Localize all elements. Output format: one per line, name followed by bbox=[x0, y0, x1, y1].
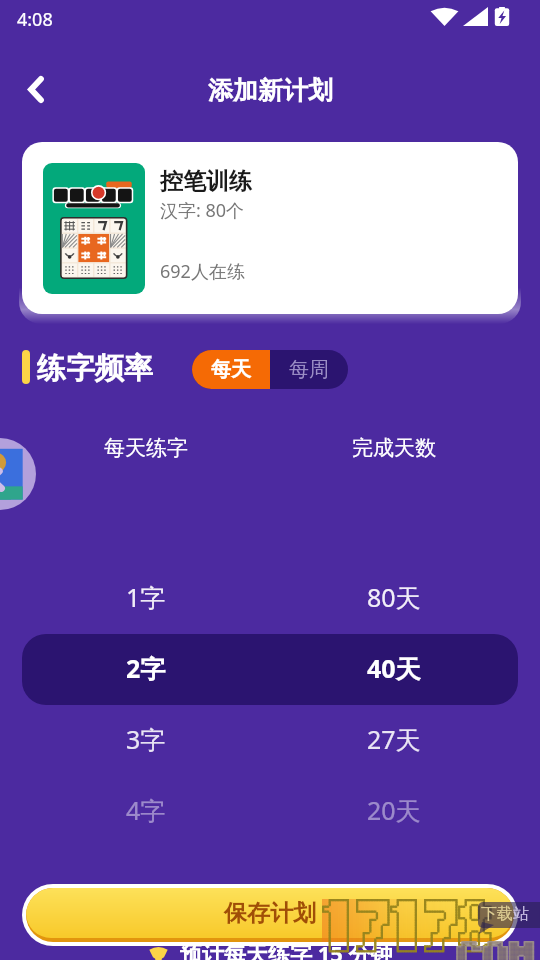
button[interactable]: Back bbox=[14, 67, 58, 111]
staticText: 80天 bbox=[367, 580, 421, 614]
staticText: 站 bbox=[513, 904, 529, 924]
button[interactable]: 2字 bbox=[22, 634, 518, 705]
button[interactable]: 3字 bbox=[22, 705, 518, 776]
button[interactable]: 每周 bbox=[270, 350, 348, 389]
staticText: 保存计划 bbox=[224, 899, 316, 928]
staticText: 27天 bbox=[367, 722, 421, 756]
staticText: 4字 bbox=[126, 793, 166, 827]
staticText: 每天 bbox=[211, 357, 251, 382]
staticText: 控笔训练 bbox=[160, 167, 252, 196]
staticText: 每周 bbox=[289, 357, 329, 382]
staticText: 40天 bbox=[367, 651, 421, 685]
button[interactable]: 控笔训练 bbox=[22, 142, 518, 314]
staticText: 下载 bbox=[481, 904, 513, 924]
staticText: 汉字: 80个 bbox=[160, 198, 245, 223]
button[interactable]: 4字 bbox=[22, 776, 518, 847]
staticText: 4:08 bbox=[17, 7, 53, 32]
staticText: 3字 bbox=[126, 722, 166, 756]
staticText: 每天练字 bbox=[104, 435, 188, 461]
staticText: 692人在练 bbox=[160, 259, 245, 284]
staticText: 20天 bbox=[367, 793, 421, 827]
staticText: 完成天数 bbox=[352, 435, 436, 461]
staticText: 2字 bbox=[126, 651, 166, 685]
button[interactable]: 1字 bbox=[22, 563, 518, 634]
button[interactable]: 保存计划 bbox=[26, 888, 514, 938]
staticText: 练字频率 bbox=[37, 350, 153, 387]
button[interactable]: 每天 bbox=[192, 350, 270, 389]
staticText: 添加新计划 bbox=[208, 75, 333, 106]
staticText: 预计每天练字 15 分钟 bbox=[180, 938, 393, 960]
staticText: 1字 bbox=[126, 580, 166, 614]
